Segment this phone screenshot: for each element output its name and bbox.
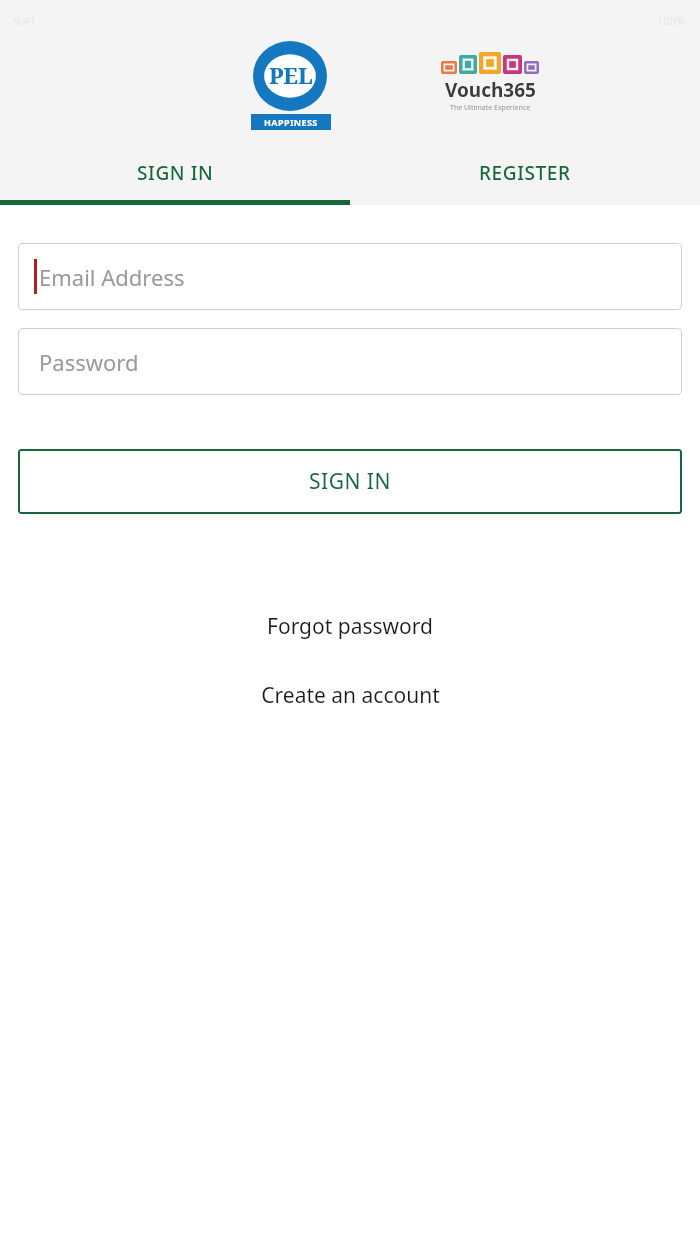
- staticText: Password: [39, 347, 139, 377]
- button[interactable]: SIGN IN: [0, 140, 350, 205]
- staticText: 9:41: [14, 13, 36, 28]
- staticText: The Ultimate Experience: [450, 103, 531, 113]
- button[interactable]: REGISTER: [350, 140, 700, 205]
- button[interactable]: Forgot password: [0, 606, 700, 646]
- button[interactable]: SIGN IN: [18, 449, 682, 514]
- button[interactable]: Create an account: [0, 675, 700, 715]
- staticText: Forgot password: [267, 612, 433, 641]
- staticText: SIGN IN: [309, 467, 391, 496]
- staticText: Create an account: [261, 681, 440, 710]
- staticText: SIGN IN: [137, 160, 214, 186]
- button[interactable]: Password: [18, 328, 682, 395]
- staticText: Vouch365: [445, 77, 536, 103]
- button[interactable]: Email Address: [18, 243, 682, 310]
- staticText: HAPPINESS: [264, 116, 318, 128]
- staticText: REGISTER: [479, 160, 571, 186]
- staticText: 100%: [657, 13, 686, 28]
- staticText: Email Address: [39, 262, 185, 292]
- staticText: PEL: [269, 60, 313, 90]
